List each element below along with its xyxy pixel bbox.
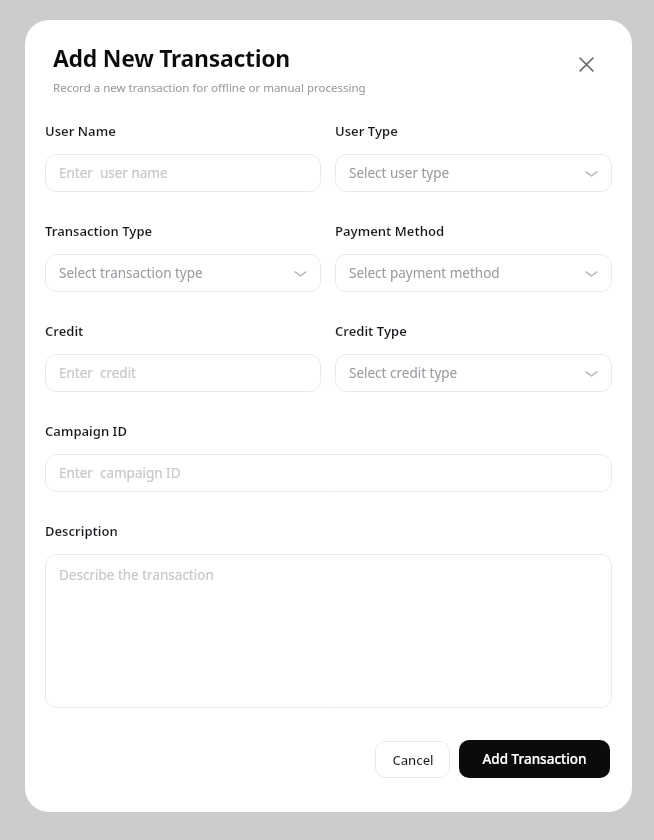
staticText: Transaction Type: [45, 222, 153, 240]
button[interactable]: Select payment method: [335, 254, 612, 292]
button[interactable]: Cancel: [375, 741, 450, 778]
staticText: Select user type: [349, 164, 450, 182]
button[interactable]: Describe the transaction: [45, 554, 612, 708]
staticText: Cancel: [392, 751, 434, 769]
staticText: Credit: [45, 322, 84, 340]
staticText: Add Transaction: [482, 750, 587, 768]
button[interactable]: Enter credit: [45, 354, 321, 392]
staticText: User Type: [335, 122, 398, 140]
button[interactable]: Select credit type: [335, 354, 612, 392]
staticText: Enter campaign ID: [59, 464, 181, 482]
staticText: Campaign ID: [45, 422, 127, 440]
button[interactable]: Enter campaign ID: [45, 454, 612, 492]
button[interactable]: Select transaction type: [45, 254, 321, 292]
staticText: Select transaction type: [59, 264, 203, 282]
button[interactable]: Enter user name: [45, 154, 321, 192]
staticText: Credit Type: [335, 322, 407, 340]
button[interactable]: Close: [574, 52, 598, 76]
button[interactable]: Add Transaction: [459, 740, 610, 778]
staticText: Description: [45, 522, 118, 540]
staticText: Payment Method: [335, 222, 445, 240]
staticText: Enter credit: [59, 364, 136, 382]
staticText: User Name: [45, 122, 116, 140]
button[interactable]: Select user type: [335, 154, 612, 192]
staticText: Select payment method: [349, 264, 500, 282]
staticText: Enter user name: [59, 164, 168, 182]
staticText: Add New Transaction: [53, 42, 290, 73]
staticText: Describe the transaction: [59, 566, 214, 584]
staticText: Record a new transaction for offline or …: [53, 80, 366, 96]
staticText: Select credit type: [349, 364, 458, 382]
